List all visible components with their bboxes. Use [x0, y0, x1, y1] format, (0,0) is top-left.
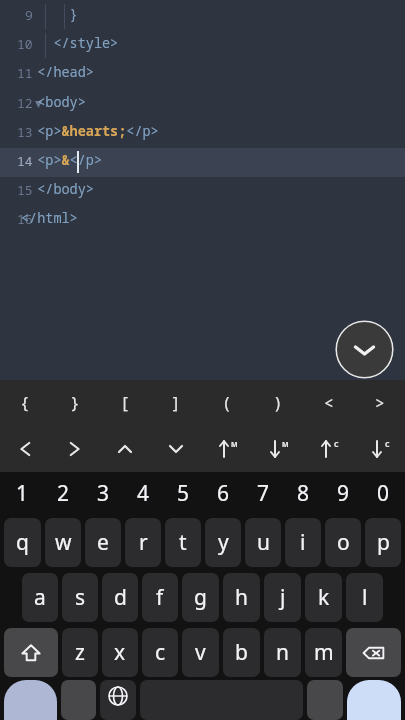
staticText: b — [235, 638, 248, 667]
button[interactable]: Symbols — [4, 680, 57, 720]
staticText: </style> — [21, 34, 119, 52]
staticText: <body> — [21, 93, 86, 111]
button[interactable]: Move left — [0, 426, 50, 472]
button[interactable]: Language — [100, 680, 136, 720]
button[interactable]: Move right — [50, 426, 100, 472]
staticText: c — [155, 638, 166, 667]
staticText: [ — [120, 392, 130, 414]
button[interactable]: l — [346, 573, 383, 622]
button[interactable]: n — [264, 628, 301, 677]
staticText: o — [337, 528, 350, 557]
button[interactable]: Scroll down — [335, 320, 394, 379]
button[interactable]: u — [245, 518, 281, 567]
staticText: 3 — [97, 479, 110, 508]
button[interactable]: i — [285, 518, 321, 567]
button[interactable]: [ — [100, 380, 150, 426]
staticText: 9 — [25, 6, 33, 24]
staticText: k — [318, 583, 330, 612]
button[interactable]: 8 — [283, 472, 323, 515]
button[interactable]: 2 — [43, 472, 83, 515]
staticText: a — [34, 583, 46, 612]
staticText: f — [156, 583, 164, 612]
staticText: } — [21, 5, 78, 23]
staticText: C — [334, 440, 339, 450]
button[interactable]: h — [223, 573, 260, 622]
button[interactable]: m — [305, 628, 342, 677]
button[interactable]: g — [182, 573, 219, 622]
button[interactable]: Move to end — [354, 426, 405, 472]
button[interactable]: > — [354, 380, 405, 426]
staticText: g — [194, 583, 207, 612]
staticText: </body> — [21, 180, 94, 198]
button[interactable]: Move to start — [303, 426, 354, 472]
staticText: 1 — [16, 479, 29, 508]
button[interactable]: Backspace — [346, 628, 401, 677]
staticText: <p>&hearts;</p> — [21, 122, 159, 140]
button[interactable]: 9 — [323, 472, 363, 515]
button[interactable]: ) — [252, 380, 303, 426]
staticText: ) — [273, 392, 283, 414]
button[interactable]: d — [102, 573, 138, 622]
button[interactable]: 1 — [2, 472, 43, 515]
button[interactable]: x — [102, 628, 138, 677]
staticText: u — [257, 528, 270, 557]
button[interactable]: Shift — [4, 628, 58, 677]
button[interactable]: 5 — [163, 472, 203, 515]
button[interactable]: v — [182, 628, 219, 677]
button[interactable]: q — [4, 518, 41, 567]
button[interactable]: s — [62, 573, 98, 622]
staticText: < — [324, 392, 334, 414]
staticText: } — [70, 392, 80, 414]
staticText: z — [75, 638, 85, 667]
staticText: y — [218, 528, 229, 557]
button[interactable]: } — [50, 380, 100, 426]
button[interactable]: Enter — [347, 680, 401, 720]
button[interactable]: 3 — [83, 472, 123, 515]
staticText: 8 — [297, 479, 310, 508]
button[interactable]: Move down — [150, 426, 201, 472]
button[interactable]: Period — [307, 680, 343, 720]
staticText: w — [55, 528, 72, 557]
button[interactable]: y — [205, 518, 241, 567]
button[interactable]: ] — [150, 380, 201, 426]
button[interactable]: e — [85, 518, 121, 567]
button[interactable]: w — [45, 518, 81, 567]
button[interactable]: Move up by word — [201, 426, 252, 472]
staticText: 9 — [337, 479, 350, 508]
button[interactable]: r — [125, 518, 161, 567]
button[interactable]: f — [142, 573, 178, 622]
button[interactable]: 7 — [243, 472, 283, 515]
button[interactable]: j — [264, 573, 301, 622]
button[interactable]: Comma — [61, 680, 96, 720]
button[interactable]: a — [22, 573, 58, 622]
button[interactable]: 6 — [203, 472, 243, 515]
button[interactable]: p — [365, 518, 401, 567]
staticText: s — [75, 583, 86, 612]
staticText: m — [314, 638, 334, 667]
staticText: <p>&</p> — [21, 151, 102, 169]
button[interactable]: ( — [201, 380, 252, 426]
button[interactable]: Move down by word — [252, 426, 303, 472]
staticText: 7 — [257, 479, 270, 508]
staticText: 13 — [17, 123, 33, 141]
button[interactable]: o — [325, 518, 361, 567]
staticText: x — [114, 638, 126, 667]
staticText: C — [385, 440, 390, 450]
button[interactable]: < — [303, 380, 354, 426]
button[interactable]: k — [305, 573, 342, 622]
staticText: 0 — [377, 479, 390, 508]
staticText: 12 — [17, 94, 33, 112]
button[interactable]: { — [0, 380, 50, 426]
staticText: p — [377, 528, 390, 557]
button[interactable]: c — [142, 628, 178, 677]
staticText: </head> — [21, 63, 94, 81]
staticText: 2 — [57, 479, 70, 508]
button[interactable]: b — [223, 628, 260, 677]
staticText: h — [235, 583, 248, 612]
button[interactable]: 0 — [363, 472, 403, 515]
button[interactable]: Move up — [100, 426, 150, 472]
button[interactable]: 4 — [123, 472, 163, 515]
button[interactable]: t — [165, 518, 201, 567]
button[interactable]: z — [62, 628, 98, 677]
